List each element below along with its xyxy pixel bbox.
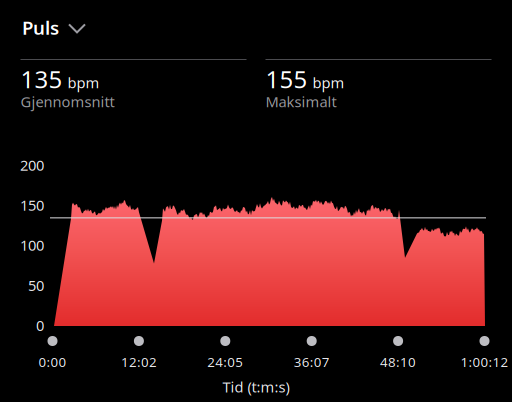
staticText: 50 bbox=[28, 275, 44, 295]
staticText: 48:10 bbox=[380, 353, 416, 371]
staticText: 155 bbox=[265, 63, 307, 95]
staticText: Tid (t:m:s) bbox=[222, 377, 289, 396]
staticText: 0:00 bbox=[38, 353, 66, 371]
button[interactable]: Puls bbox=[0, 0, 103, 52]
staticText: 0 bbox=[36, 315, 44, 335]
staticText: Puls bbox=[22, 15, 59, 40]
staticText: 135 bbox=[20, 63, 62, 95]
staticText: bpm bbox=[67, 73, 99, 92]
staticText: 24:05 bbox=[207, 353, 243, 371]
staticText: Maksimalt bbox=[265, 92, 336, 111]
staticText: 200 bbox=[20, 155, 44, 175]
staticText: 36:07 bbox=[294, 353, 330, 371]
staticText: 150 bbox=[20, 195, 44, 215]
staticText: bpm bbox=[312, 73, 344, 92]
staticText: 1:00:12 bbox=[460, 353, 508, 371]
staticText: Gjennomsnitt bbox=[20, 92, 114, 111]
staticText: 12:02 bbox=[121, 353, 157, 371]
staticText: 100 bbox=[20, 235, 44, 255]
